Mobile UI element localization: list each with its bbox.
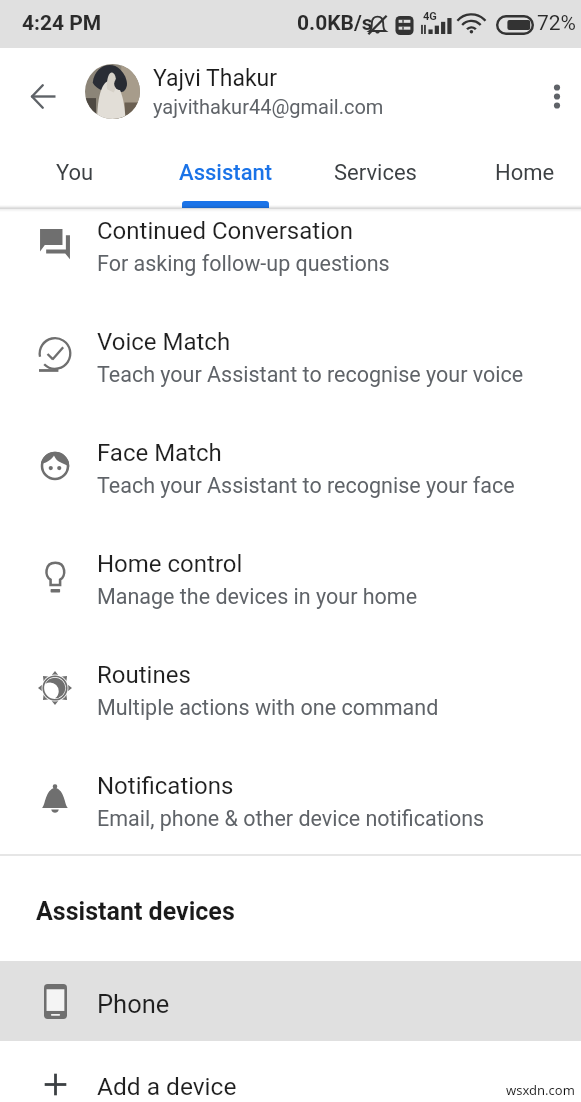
button[interactable]: Continued Conversation [0, 188, 581, 299]
staticText: wsxdn.com [506, 1081, 575, 1099]
staticText: Home control [97, 550, 243, 578]
staticText: 72% [537, 11, 576, 36]
staticText: Assistant devices [36, 897, 235, 926]
button[interactable]: Add a device [0, 1044, 581, 1102]
button[interactable]: Phone [0, 961, 581, 1041]
staticText: Assistant [179, 160, 273, 186]
staticText: Manage the devices in your home [97, 584, 418, 609]
staticText: Yajvi Thakur [153, 65, 278, 92]
button[interactable]: Face Match [0, 410, 581, 521]
staticText: 0.0KB/s [297, 11, 373, 36]
button[interactable]: Voice Match [0, 299, 581, 410]
button[interactable]: Home control [0, 521, 581, 632]
staticText: Voice Match [97, 328, 231, 356]
staticText: Phone [97, 989, 170, 1019]
staticText: Face Match [97, 439, 222, 467]
button[interactable]: Home [450, 144, 581, 208]
staticText: Teach your Assistant to recognise your f… [97, 473, 515, 498]
button[interactable]: Assistant [151, 144, 301, 208]
staticText: Home [495, 160, 555, 186]
staticText: Teach your Assistant to recognise your v… [97, 362, 524, 387]
staticText: yajvithakur44@gmail.com [153, 95, 384, 118]
staticText: Multiple actions with one command [97, 695, 439, 720]
staticText: You [56, 160, 94, 186]
staticText: Routines [97, 661, 191, 689]
staticText: Continued Conversation [97, 217, 353, 245]
staticText: 4:24 PM [22, 11, 102, 36]
staticText: For asking follow-up questions [97, 251, 390, 276]
staticText: 4G [423, 10, 437, 23]
button[interactable]: More options [533, 48, 581, 144]
button[interactable]: Services [300, 144, 450, 208]
staticText: Add a device [97, 1072, 237, 1101]
button[interactable]: Back [8, 48, 78, 144]
button[interactable]: Notifications [0, 743, 581, 854]
button[interactable]: You [0, 144, 150, 208]
staticText: Notifications [97, 772, 234, 800]
staticText: Email, phone & other device notification… [97, 806, 485, 831]
button[interactable]: Routines [0, 632, 581, 743]
staticText: Services [334, 160, 417, 186]
